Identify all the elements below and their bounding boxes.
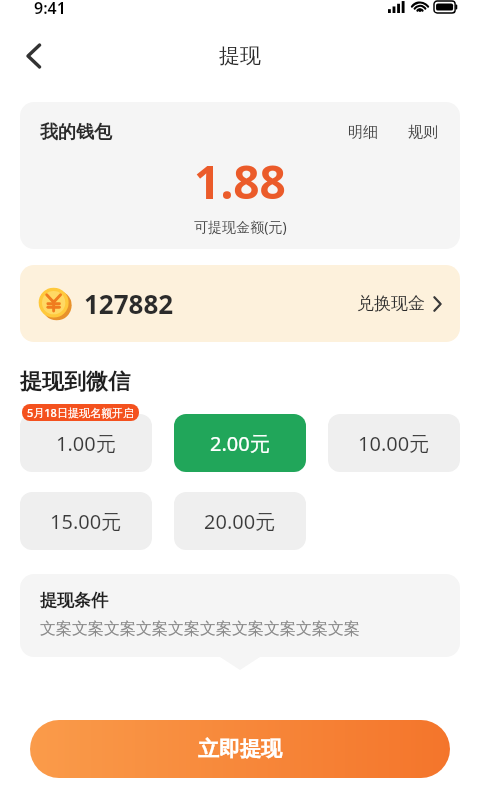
staticText: 兑换现金	[357, 293, 425, 314]
staticText: 2.00元	[210, 430, 270, 457]
staticText: 10.00元	[358, 430, 430, 457]
button[interactable]: 明细	[344, 121, 382, 144]
button[interactable]: 127882	[20, 265, 460, 342]
button[interactable]: 20.00元	[174, 492, 306, 550]
button[interactable]: 1.00元	[20, 414, 152, 472]
staticText: 127882	[84, 286, 174, 321]
staticText: 5月18日提现名额开启	[27, 405, 134, 420]
staticText: 提现到微信	[20, 368, 130, 396]
button[interactable]: 规则	[404, 121, 442, 144]
button[interactable]: 15.00元	[20, 492, 152, 550]
staticText: 提现	[219, 43, 261, 69]
button[interactable]: 立即提现	[30, 720, 450, 778]
staticText: 20.00元	[204, 508, 276, 535]
staticText: 规则	[408, 123, 438, 142]
button[interactable]: 10.00元	[328, 414, 460, 472]
staticText: 1.88	[194, 150, 286, 213]
staticText: 我的钱包	[40, 121, 112, 144]
staticText: 可提现金额(元)	[194, 217, 287, 236]
staticText: 文案文案文案文案文案文案文案文案文案文案	[40, 619, 360, 639]
button[interactable]: Back	[10, 32, 58, 80]
staticText: 15.00元	[50, 508, 122, 535]
staticText: 立即提现	[198, 736, 282, 762]
staticText: 1.00元	[56, 430, 116, 457]
button[interactable]: 2.00元	[174, 414, 306, 472]
staticText: 9:41	[34, 0, 66, 19]
staticText: 明细	[348, 123, 378, 142]
staticText: 提现条件	[40, 590, 108, 611]
